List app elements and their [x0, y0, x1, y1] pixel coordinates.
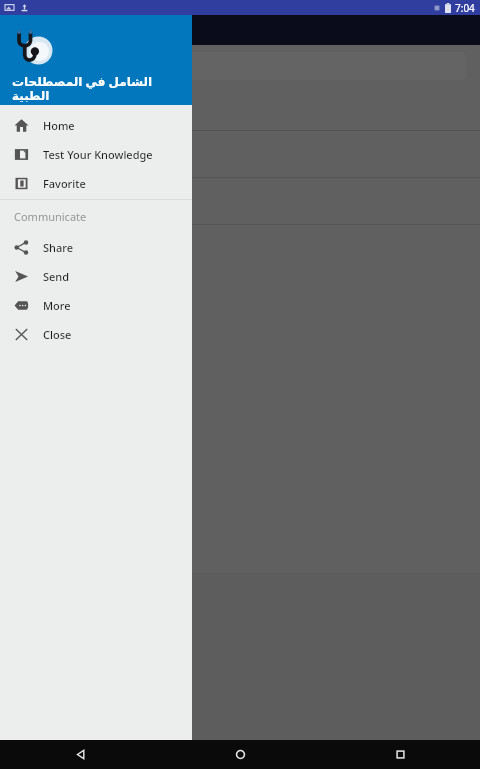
button[interactable]: Phagopyrism — [0, 130, 480, 177]
staticText: حرقة غذائية — [34, 201, 88, 216]
button[interactable]: Test Your Knowledge — [0, 140, 192, 169]
staticText: 7:04 — [455, 1, 475, 15]
button[interactable]: More — [0, 291, 192, 320]
button[interactable]: Favorite — [0, 169, 192, 198]
staticText: More — [43, 298, 71, 313]
button[interactable]: Back — [65, 740, 95, 769]
staticText: Test Your Knowledge — [43, 147, 153, 162]
staticText: Send — [43, 269, 70, 284]
button[interactable]: Home — [225, 740, 255, 769]
button[interactable]: Close — [0, 320, 192, 349]
staticText: Phagopyrism — [22, 137, 91, 152]
button[interactable]: Recents — [385, 740, 415, 769]
staticText: Share — [43, 240, 73, 255]
button[interactable] — [14, 52, 466, 80]
staticText: Communicate — [14, 209, 87, 224]
button[interactable]: Phagopyrismus — [0, 177, 480, 224]
button[interactable]: Home — [0, 111, 192, 140]
staticText: الشامل في المصطلحات الطبية — [12, 73, 192, 103]
button[interactable]: Send — [0, 262, 192, 291]
staticText: Favorite — [43, 176, 86, 191]
button[interactable]: Share — [0, 233, 192, 262]
staticText: Home — [43, 118, 75, 133]
button[interactable]: الشامل في المصطلحات الطبية — [0, 15, 192, 105]
staticText: Phagopyrismus — [22, 184, 103, 199]
staticText: Close — [43, 327, 72, 342]
staticText: حرقة غذائية — [34, 154, 88, 169]
